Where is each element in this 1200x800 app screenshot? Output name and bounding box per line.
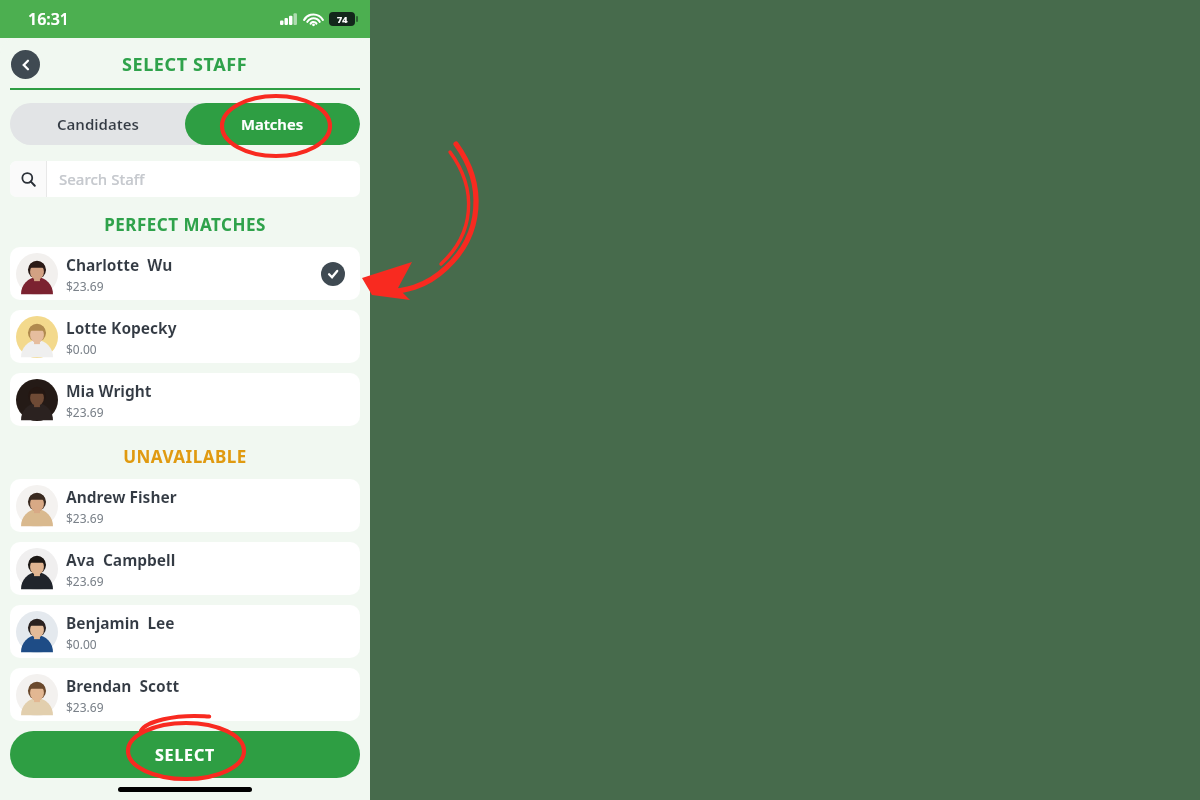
button[interactable]: Candidates <box>10 103 185 145</box>
button[interactable]: Andrew Fisher <box>10 479 360 532</box>
staticText: 74 <box>337 13 348 25</box>
staticText: Matches <box>241 114 304 134</box>
button[interactable]: Charlotte Wu <box>10 247 360 300</box>
staticText: Brendan Scott <box>66 675 180 696</box>
staticText: 16:31 <box>28 8 70 30</box>
staticText: $23.69 <box>66 404 104 420</box>
staticText: Ava Campbell <box>66 549 176 570</box>
staticText: SELECT <box>155 744 215 766</box>
button[interactable]: Selected <box>321 262 345 286</box>
button[interactable]: Back <box>11 50 40 79</box>
staticText: UNAVAILABLE <box>0 445 370 468</box>
staticText: Andrew Fisher <box>66 486 177 507</box>
button[interactable]: Brendan Scott <box>10 668 360 721</box>
staticText: $23.69 <box>66 278 104 294</box>
staticText: PERFECT MATCHES <box>0 213 370 236</box>
staticText: $23.69 <box>66 510 104 526</box>
staticText: $0.00 <box>66 636 97 652</box>
staticText: $23.69 <box>66 699 104 715</box>
staticText: $0.00 <box>66 341 97 357</box>
button[interactable]: Mia Wright <box>10 373 360 426</box>
staticText: SELECT STAFF <box>122 52 248 77</box>
staticText: Candidates <box>57 114 139 134</box>
staticText: Search Staff <box>59 169 145 189</box>
staticText: $23.69 <box>66 573 104 589</box>
button[interactable]: Search Staff <box>10 161 360 197</box>
button[interactable]: Matches <box>185 103 360 145</box>
button[interactable]: SELECT <box>10 731 360 778</box>
staticText: Benjamin Lee <box>66 612 175 633</box>
staticText: Charlotte Wu <box>66 254 173 275</box>
button[interactable]: Lotte Kopecky <box>10 310 360 363</box>
staticText: Lotte Kopecky <box>66 317 177 338</box>
button[interactable]: Ava Campbell <box>10 542 360 595</box>
staticText: Mia Wright <box>66 380 152 401</box>
button[interactable]: Benjamin Lee <box>10 605 360 658</box>
